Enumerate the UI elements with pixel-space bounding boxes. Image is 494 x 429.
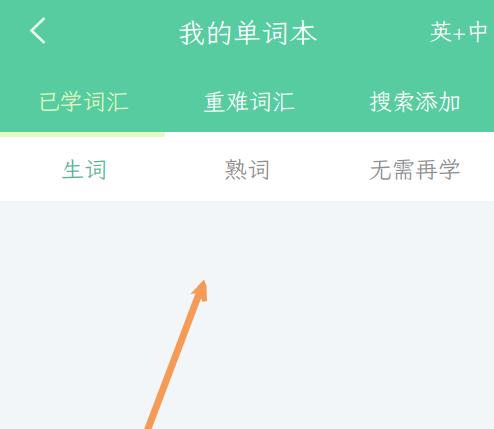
- button[interactable]: 生词: [0, 137, 165, 201]
- staticText: 重难词汇: [202, 86, 294, 116]
- button[interactable]: 重难词汇: [165, 68, 329, 129]
- staticText: 我的单词本: [177, 14, 317, 51]
- staticText: 熟词: [224, 154, 270, 184]
- staticText: 生词: [61, 154, 107, 184]
- staticText: 英+中: [429, 16, 489, 46]
- staticText: 搜索添加: [369, 86, 461, 116]
- button[interactable]: 无需再学: [329, 137, 494, 201]
- button[interactable]: 熟词: [165, 137, 329, 201]
- button[interactable]: 搜索添加: [329, 68, 494, 129]
- button[interactable]: 英+中: [429, 5, 494, 65]
- button[interactable]: 已学词汇: [0, 68, 165, 129]
- staticText: 已学词汇: [36, 86, 128, 116]
- staticText: 无需再学: [369, 154, 461, 184]
- button[interactable]: Back: [0, 5, 60, 65]
